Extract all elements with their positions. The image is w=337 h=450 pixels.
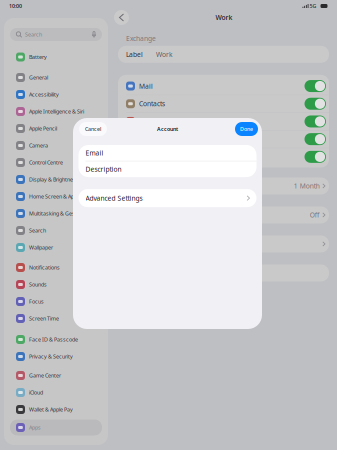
button[interactable]: Cancel bbox=[79, 122, 107, 136]
button[interactable]: iCloud bbox=[4, 384, 108, 401]
staticText: Off bbox=[310, 210, 320, 219]
staticText: 10:00 bbox=[9, 2, 22, 10]
button[interactable]: Game Center bbox=[4, 367, 108, 384]
button[interactable]: Camera bbox=[4, 137, 108, 154]
button[interactable]: Sounds bbox=[4, 276, 108, 293]
staticText: Privacy & Security bbox=[29, 353, 73, 360]
staticText: Camera bbox=[29, 142, 48, 149]
button[interactable]: Account bbox=[118, 235, 329, 252]
staticText: Search bbox=[29, 227, 46, 234]
staticText: Exchange bbox=[126, 34, 156, 43]
staticText: Mail Days to Sync bbox=[126, 181, 181, 190]
button[interactable]: Done bbox=[235, 122, 258, 136]
staticText: Screen Time bbox=[29, 315, 59, 322]
staticText: Home Screen & App Library bbox=[29, 193, 95, 200]
staticText: Wallet & Apple Pay bbox=[29, 406, 73, 413]
button[interactable]: Display & Brightness bbox=[4, 171, 108, 188]
staticText: Battery bbox=[29, 53, 47, 61]
button[interactable]: Apps bbox=[4, 419, 102, 435]
button[interactable]: Search bbox=[4, 222, 108, 239]
staticText: Accessibility bbox=[29, 91, 59, 98]
staticText: Work bbox=[156, 50, 173, 59]
button[interactable]: Reminders bbox=[118, 130, 329, 148]
button[interactable]: Notes bbox=[118, 148, 329, 165]
staticText: 5G bbox=[309, 2, 316, 10]
staticText: Advanced Settings bbox=[85, 194, 142, 203]
staticText: Cancel bbox=[85, 125, 101, 133]
staticText: 1 Month bbox=[294, 181, 320, 190]
staticText: Game Center bbox=[29, 372, 61, 379]
button[interactable]: General bbox=[4, 69, 108, 86]
button[interactable]: Wallet & Apple Pay bbox=[4, 401, 108, 418]
staticText: Label bbox=[126, 50, 143, 59]
button[interactable]: Control Centre bbox=[4, 154, 108, 171]
staticText: Done bbox=[240, 125, 253, 133]
button[interactable]: Multitasking & Gestures bbox=[4, 205, 108, 222]
staticText: Calendars bbox=[139, 117, 171, 126]
staticText: iCloud bbox=[29, 389, 43, 396]
button[interactable]: Mail bbox=[118, 77, 329, 95]
staticText: Notifications bbox=[29, 264, 60, 271]
button[interactable]: Calendars bbox=[118, 112, 329, 130]
staticText: Apps bbox=[29, 424, 41, 431]
staticText: Display & Brightness bbox=[29, 176, 79, 183]
button[interactable]: Mail Days to Sync bbox=[118, 177, 329, 194]
button[interactable]: Accessibility bbox=[4, 86, 108, 103]
button[interactable]: Home Screen & App Library bbox=[4, 188, 108, 205]
button[interactable]: Wallpaper bbox=[4, 239, 108, 256]
staticText: Mail bbox=[139, 82, 153, 90]
staticText: General bbox=[29, 74, 48, 81]
staticText: Control Centre bbox=[29, 159, 63, 166]
staticText: Work bbox=[215, 13, 232, 22]
staticText: Email bbox=[85, 148, 103, 157]
button[interactable]: Privacy & Security bbox=[4, 348, 108, 365]
staticText: Apple Pencil bbox=[29, 125, 57, 132]
staticText: Search bbox=[25, 31, 42, 38]
button[interactable]: Focus bbox=[4, 293, 108, 310]
staticText: Wallpaper bbox=[29, 244, 53, 251]
staticText: Multitasking & Gestures bbox=[29, 210, 88, 217]
button[interactable]: Battery bbox=[4, 48, 108, 65]
staticText: Focus bbox=[29, 298, 44, 305]
staticText: Sounds bbox=[29, 281, 47, 288]
staticText: Apple Intelligence & Siri bbox=[29, 108, 84, 115]
button[interactable]: Screen Time bbox=[4, 310, 108, 327]
staticText: Face ID & Passcode bbox=[29, 336, 78, 343]
button[interactable]: Contacts bbox=[118, 95, 329, 112]
button[interactable]: Advanced Settings bbox=[78, 189, 256, 207]
button[interactable]: Face ID & Passcode bbox=[4, 331, 108, 348]
staticText: Account bbox=[157, 125, 178, 133]
button[interactable]: Notifications bbox=[4, 259, 108, 276]
staticText: Description bbox=[85, 165, 121, 174]
button[interactable]: Back bbox=[114, 10, 129, 25]
button[interactable]: Apple Intelligence & Siri bbox=[4, 103, 108, 120]
button[interactable]: Mail Folders to Push bbox=[118, 206, 329, 223]
button[interactable]: Apple Pencil bbox=[4, 120, 108, 137]
staticText: Contacts bbox=[139, 99, 165, 108]
